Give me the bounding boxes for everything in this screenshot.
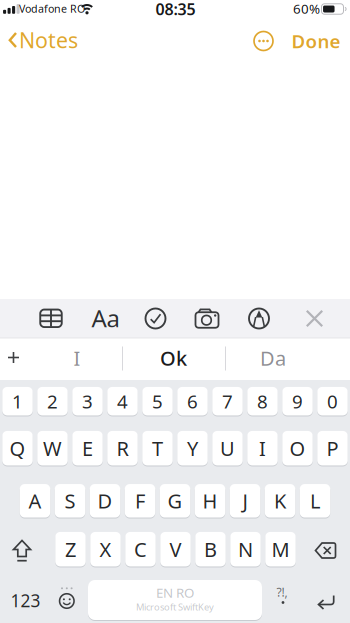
staticText: 60% [293, 0, 320, 17]
staticText: Y [187, 435, 198, 461]
button[interactable]: D [90, 484, 120, 518]
button[interactable]: F [125, 484, 155, 518]
staticText: A [28, 487, 41, 514]
button[interactable]: A [20, 484, 50, 518]
button[interactable]: Checklist [140, 303, 170, 333]
button[interactable]: E [72, 431, 103, 465]
button[interactable]: Text format [88, 303, 122, 333]
button[interactable]: Q [2, 431, 33, 465]
button[interactable]: 8 [247, 387, 278, 415]
staticText: H [202, 487, 217, 514]
staticText: B [204, 536, 217, 562]
button[interactable]: Expand [0, 344, 26, 370]
button[interactable]: Insert table [36, 303, 66, 333]
staticText: Da [260, 345, 286, 371]
button[interactable]: Dismiss toolbar [299, 303, 329, 333]
staticText: W [43, 435, 62, 461]
button[interactable]: 3 [72, 387, 103, 415]
button[interactable]: Return [306, 583, 346, 619]
staticText: C [134, 536, 147, 562]
button[interactable]: 4 [107, 387, 138, 415]
button[interactable]: Emoji [50, 581, 84, 617]
button[interactable]: 2 [37, 387, 68, 415]
staticText: Vodafone RO [19, 1, 85, 16]
button[interactable]: C [125, 532, 156, 566]
staticText: U [220, 435, 235, 461]
button[interactable]: S [55, 484, 85, 518]
staticText: 5 [152, 389, 163, 414]
staticText: P [326, 435, 338, 461]
button[interactable]: 5 [142, 387, 173, 415]
button[interactable]: I [37, 341, 117, 375]
staticText: 8 [257, 389, 268, 414]
staticText: 2 [47, 389, 58, 414]
staticText: 6 [187, 389, 198, 414]
staticText: M [271, 536, 289, 562]
button[interactable]: Period [266, 583, 298, 611]
button[interactable]: I [247, 431, 278, 465]
button[interactable]: Space [88, 580, 262, 620]
staticText: Aa [91, 302, 119, 334]
staticText: V [169, 536, 181, 562]
staticText: Microsoft SwiftKey [136, 601, 214, 613]
staticText: Z [65, 536, 76, 562]
button[interactable]: G [160, 484, 190, 518]
button[interactable]: P [317, 431, 348, 465]
button[interactable]: Markup [244, 303, 274, 333]
staticText: I [259, 435, 266, 461]
staticText: 123 [10, 589, 40, 612]
staticText: Done [291, 29, 340, 53]
button[interactable]: R [107, 431, 138, 465]
staticText: I [73, 345, 80, 371]
staticText: Notes [19, 26, 78, 54]
staticText: J [242, 487, 247, 514]
staticText: Ok [160, 345, 187, 371]
button[interactable]: J [230, 484, 260, 518]
button[interactable]: U [212, 431, 243, 465]
staticText: 9 [292, 389, 303, 414]
button[interactable]: 1 [2, 387, 33, 415]
staticText: D [97, 487, 112, 514]
button[interactable]: More [250, 28, 276, 54]
staticText: 3 [82, 389, 93, 414]
button[interactable]: Z [55, 532, 86, 566]
staticText: 1 [12, 389, 23, 414]
staticText: 7 [222, 389, 233, 414]
staticText: S [64, 487, 75, 514]
staticText: X [99, 536, 111, 562]
button[interactable]: X [90, 532, 121, 566]
button[interactable]: Ok [128, 341, 218, 375]
button[interactable]: Da [228, 341, 318, 375]
staticText: N [238, 536, 253, 562]
button[interactable]: W [37, 431, 68, 465]
button[interactable]: Notes [2, 26, 78, 54]
staticText: F [135, 487, 145, 514]
button[interactable]: B [195, 532, 226, 566]
staticText: E [82, 435, 93, 461]
staticText: 08:35 [155, 0, 195, 20]
button[interactable]: V [160, 532, 191, 566]
button[interactable]: 0 [317, 387, 348, 415]
button[interactable]: H [195, 484, 225, 518]
staticText: Q [9, 435, 25, 461]
staticText: EN RO [156, 584, 194, 601]
button[interactable]: 7 [212, 387, 243, 415]
staticText: L [310, 487, 320, 514]
staticText: ?!, [276, 584, 287, 600]
button[interactable]: T [142, 431, 173, 465]
button[interactable]: Shift [2, 531, 42, 567]
button[interactable]: L [300, 484, 330, 518]
button[interactable]: K [265, 484, 295, 518]
button[interactable]: Y [177, 431, 208, 465]
button[interactable]: N [230, 532, 261, 566]
staticText: K [274, 487, 286, 514]
button[interactable]: 9 [282, 387, 313, 415]
button[interactable]: Done [286, 26, 346, 56]
button[interactable]: 6 [177, 387, 208, 415]
button[interactable]: Delete [305, 532, 347, 568]
staticText: 4 [117, 389, 128, 414]
button[interactable]: 123 [4, 585, 46, 615]
button[interactable]: M [265, 532, 296, 566]
button[interactable]: Camera [190, 303, 224, 333]
button[interactable]: O [282, 431, 313, 465]
